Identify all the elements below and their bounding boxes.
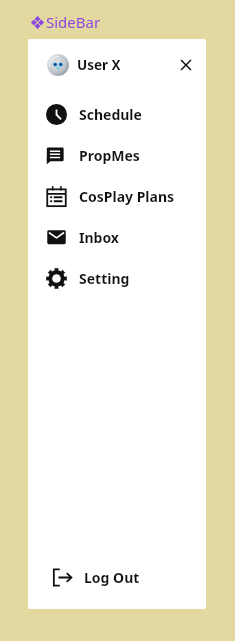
staticText: Schedule bbox=[79, 105, 142, 124]
staticText: CosPlay Plans bbox=[79, 187, 175, 206]
staticText: SideBar bbox=[46, 12, 101, 32]
button[interactable]: Close bbox=[174, 53, 198, 77]
button[interactable]: Schedule bbox=[28, 94, 206, 135]
staticText: Setting bbox=[79, 269, 130, 288]
button[interactable]: PropMes bbox=[28, 135, 206, 176]
button[interactable]: CosPlay Plans bbox=[28, 176, 206, 217]
staticText: Inbox bbox=[79, 228, 119, 247]
button[interactable]: Setting bbox=[28, 258, 206, 299]
staticText: PropMes bbox=[79, 146, 140, 165]
staticText: Log Out bbox=[84, 568, 140, 587]
button[interactable]: Inbox bbox=[28, 217, 206, 258]
button[interactable]: Log Out bbox=[28, 557, 206, 598]
staticText: User X bbox=[77, 56, 121, 74]
